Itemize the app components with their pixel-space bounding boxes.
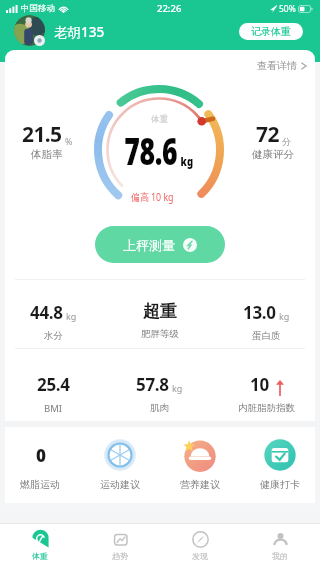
staticText: 健康打卡 [260, 478, 300, 491]
button[interactable]: 我的 [240, 524, 320, 568]
button[interactable]: 13.0 [213, 301, 320, 342]
staticText: 水分 [44, 330, 63, 342]
button[interactable]: 72 [226, 120, 320, 162]
staticText: kg [66, 310, 77, 322]
staticText: 老胡135 [54, 23, 105, 41]
staticText: 我的 [272, 551, 288, 561]
button[interactable]: 发现 [160, 524, 240, 568]
staticText: 上秤测量 [123, 237, 175, 253]
staticText: BMI [44, 402, 63, 415]
staticText: 查看详情 [257, 59, 297, 72]
staticText: 57.8 [136, 373, 169, 396]
button[interactable]: 体重 [0, 524, 80, 568]
button[interactable]: 上秤测量 [95, 226, 225, 263]
staticText: 13.0 [243, 301, 276, 324]
staticText: 蛋白质 [252, 330, 281, 342]
button[interactable]: 查看详情 [254, 56, 310, 75]
staticText: 体重 [151, 114, 168, 125]
staticText: 中国移动 [21, 3, 55, 14]
staticText: 50% [279, 3, 296, 15]
button[interactable]: 57.8 [106, 373, 213, 414]
staticText: 22:26 [157, 2, 182, 15]
staticText: 发现 [192, 551, 208, 561]
button[interactable]: 44.8 [0, 301, 106, 342]
button[interactable]: 趋势 [80, 524, 160, 568]
staticText: 0 [36, 444, 45, 467]
staticText: 趋势 [112, 551, 128, 561]
staticText: 肌肉 [150, 402, 169, 414]
staticText: 运动建议 [100, 478, 140, 491]
staticText: 10 [250, 373, 269, 396]
staticText: 21.5 [22, 120, 62, 149]
button[interactable]: 21.5 [0, 120, 94, 162]
staticText: 25.4 [37, 373, 70, 396]
button[interactable]: 营养建议 [160, 439, 240, 491]
staticText: 肥胖等级 [141, 328, 179, 340]
button[interactable]: 运动建议 [80, 439, 160, 491]
staticText: 体脂率 [31, 148, 63, 161]
staticText: 44.8 [30, 301, 63, 324]
staticText: 超重 [143, 301, 177, 322]
button[interactable]: 25.4 [0, 373, 106, 415]
button[interactable]: 0 [0, 439, 80, 491]
button[interactable]: 记录体重 [239, 23, 303, 40]
staticText: 72 [256, 120, 279, 149]
staticText: 78.6 [124, 125, 178, 175]
button[interactable]: 超重 [106, 301, 213, 340]
staticText: 健康评分 [252, 148, 294, 161]
staticText: % [65, 135, 73, 147]
staticText: kg [181, 153, 193, 169]
staticText: 偏高 10 kg [131, 190, 174, 204]
staticText: 燃脂运动 [20, 478, 60, 491]
staticText: 分 [282, 136, 291, 147]
staticText: 体重 [32, 551, 48, 561]
staticText: kg [279, 310, 290, 322]
staticText: kg [172, 382, 183, 394]
staticText: 记录体重 [251, 25, 291, 38]
button[interactable]: 健康打卡 [240, 439, 320, 491]
staticText: 营养建议 [180, 478, 220, 491]
button[interactable]: 10 [213, 373, 320, 414]
staticText: 内脏脂肪指数 [238, 402, 295, 414]
